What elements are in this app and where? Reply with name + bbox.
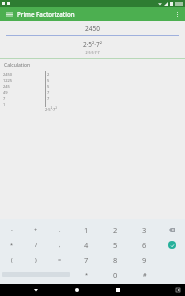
staticText: 2·5²·7²: [45, 107, 57, 112]
staticText: 2: [47, 72, 50, 77]
button[interactable]: More options: [172, 9, 182, 19]
staticText: Calculation: [4, 62, 31, 69]
staticText: 7: [84, 255, 89, 265]
staticText: ): [35, 256, 37, 263]
staticText: 1: [3, 102, 6, 107]
staticText: 2450: [6, 24, 179, 33]
button[interactable]: 9: [130, 252, 159, 267]
staticText: 3: [142, 225, 147, 235]
button[interactable]: +: [24, 222, 48, 237]
button[interactable]: =: [48, 252, 72, 267]
staticText: 4: [84, 240, 89, 250]
button[interactable]: Back: [31, 285, 41, 295]
staticText: 5: [47, 84, 50, 89]
staticText: Prime Factorization: [17, 10, 75, 18]
button[interactable]: Recent apps: [113, 285, 123, 295]
staticText: 7: [47, 90, 50, 95]
button[interactable]: 1: [72, 222, 101, 237]
button[interactable]: *: [0, 237, 24, 252]
staticText: (: [11, 256, 13, 263]
staticText: 5: [113, 240, 118, 250]
staticText: #: [143, 271, 147, 278]
staticText: .: [59, 226, 61, 233]
staticText: 1: [84, 225, 89, 235]
staticText: *: [85, 271, 89, 278]
staticText: /: [35, 241, 38, 248]
staticText: 7: [3, 96, 6, 101]
button[interactable]: Home: [72, 285, 82, 295]
button[interactable]: 2: [101, 222, 130, 237]
staticText: 2·5²·7²: [0, 40, 185, 49]
button[interactable]: 3: [130, 222, 159, 237]
button[interactable]: 0: [101, 267, 130, 282]
button[interactable]: /: [24, 237, 48, 252]
staticText: ,: [59, 241, 61, 248]
staticText: 0: [113, 270, 118, 280]
staticText: 5: [47, 78, 50, 83]
staticText: 9: [142, 255, 147, 265]
staticText: 2450: [3, 72, 13, 77]
button[interactable]: 5: [101, 237, 130, 252]
button[interactable]: *: [72, 267, 101, 282]
button[interactable]: Open navigation menu: [4, 9, 14, 19]
staticText: 6: [142, 240, 147, 250]
staticText: 7: [47, 96, 50, 101]
button[interactable]: Switch keyboard: [173, 285, 183, 295]
button[interactable]: 7: [72, 252, 101, 267]
button[interactable]: ): [24, 252, 48, 267]
staticText: 49: [3, 90, 8, 95]
button[interactable]: 4: [72, 237, 101, 252]
button[interactable]: Backspace: [159, 222, 185, 237]
staticText: +: [34, 226, 38, 233]
staticText: *: [10, 241, 14, 248]
staticText: =: [58, 256, 62, 263]
button[interactable]: 6: [130, 237, 159, 252]
staticText: 8: [113, 255, 118, 265]
staticText: 2·5·5·7·7: [0, 50, 185, 55]
button[interactable]: #: [130, 267, 159, 282]
staticText: 245: [3, 84, 10, 89]
staticText: -: [11, 226, 13, 233]
button[interactable]: ,: [48, 237, 72, 252]
staticText: 2: [113, 225, 118, 235]
button[interactable]: (: [0, 252, 24, 267]
button[interactable]: 8: [101, 252, 130, 267]
button[interactable]: Confirm: [159, 237, 185, 252]
staticText: 1225: [3, 78, 13, 83]
